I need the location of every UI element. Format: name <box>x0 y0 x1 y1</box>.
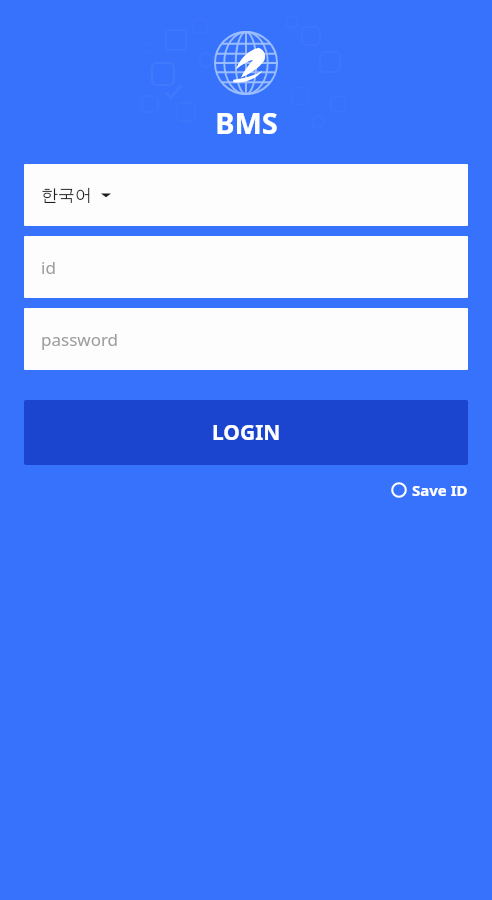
button[interactable]: Save ID <box>389 477 470 503</box>
staticText: password <box>41 328 119 351</box>
staticText: id <box>41 256 56 279</box>
button[interactable]: LOGIN <box>24 400 468 465</box>
staticText: Save ID <box>412 480 468 500</box>
button[interactable]: 한국어 <box>24 164 468 226</box>
button[interactable]: password <box>24 308 468 370</box>
staticText: 한국어 <box>41 185 92 206</box>
staticText: LOGIN <box>212 418 281 447</box>
staticText: BMS <box>215 103 278 142</box>
button[interactable]: id <box>24 236 468 298</box>
